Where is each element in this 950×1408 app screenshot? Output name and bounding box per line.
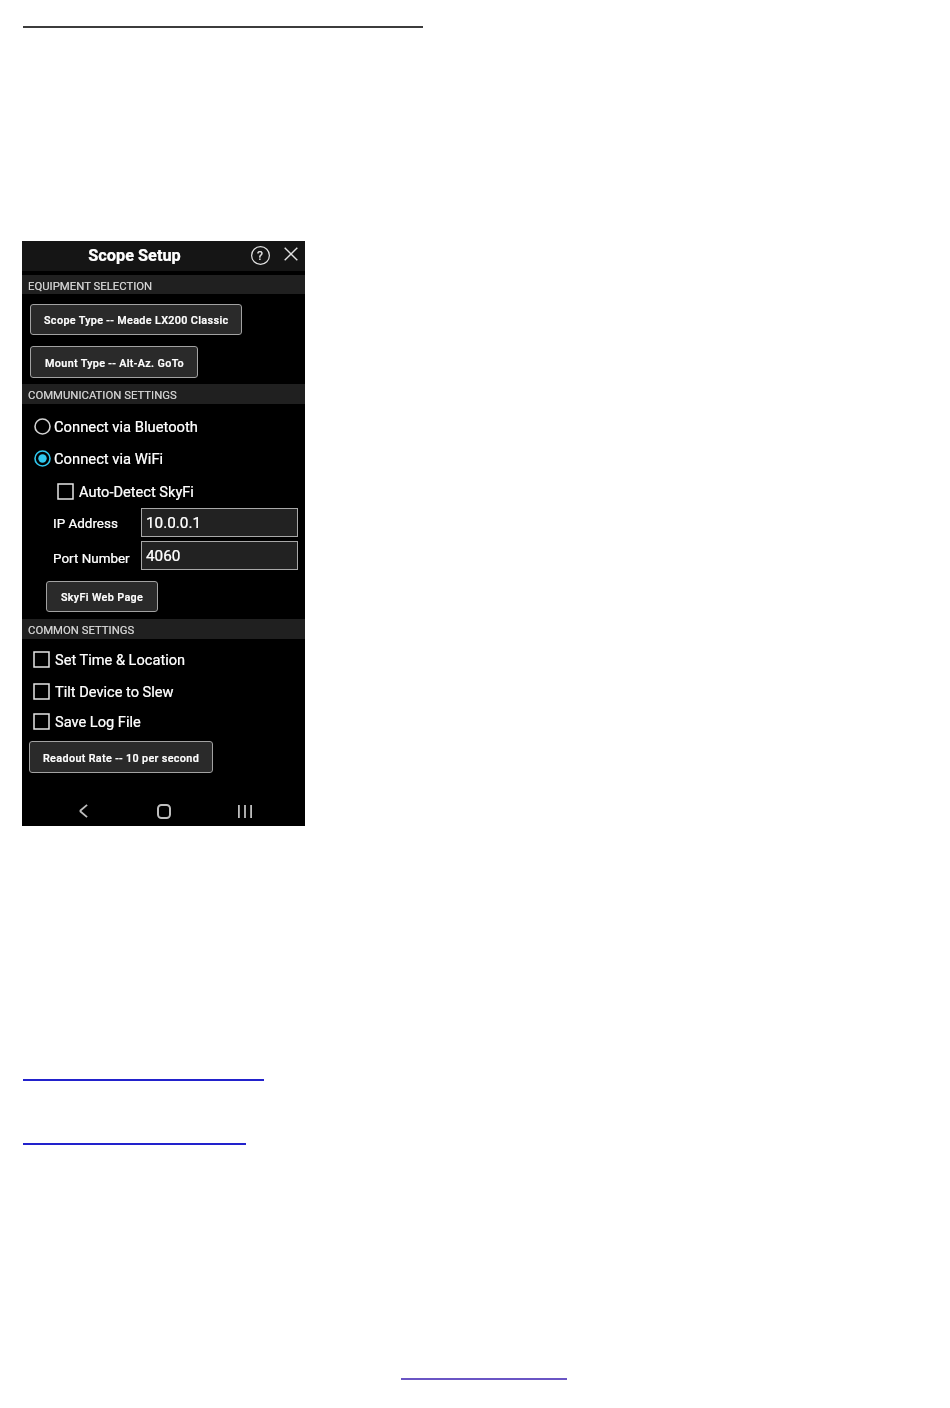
button[interactable]: Tilt Device to Slew: [30, 679, 260, 704]
button[interactable]: 10.0.0.1: [141, 508, 298, 537]
staticText: Save Log File: [55, 713, 141, 730]
staticText: Connect via Bluetooth: [54, 418, 198, 435]
button[interactable]: Readout Rate -- 10 per second: [29, 741, 213, 773]
button[interactable]: Save Log File: [30, 709, 260, 734]
staticText: COMMON SETTINGS: [28, 623, 135, 636]
staticText: Port Number: [53, 551, 130, 567]
button[interactable]: Auto-Detect SkyFi: [54, 479, 284, 504]
button[interactable]: Mount Type -- Alt-Az. GoTo: [30, 346, 198, 378]
button[interactable]: Set Time & Location: [30, 647, 260, 672]
button[interactable]: Back: [66, 794, 100, 828]
staticText: Auto-Detect SkyFi: [79, 483, 194, 500]
button[interactable]: SkyFi Web Page: [46, 581, 158, 612]
button[interactable]: Help: [248, 243, 272, 267]
staticText: ?: [257, 248, 263, 263]
button[interactable]: Home: [147, 794, 181, 828]
staticText: Scope Type -- Meade LX200 Classic: [44, 314, 229, 327]
button[interactable]: Connect via Bluetooth: [28, 412, 278, 440]
button[interactable]: Recent apps: [228, 794, 262, 828]
staticText: Mount Type -- Alt-Az. GoTo: [45, 357, 184, 370]
staticText: COMMUNICATION SETTINGS: [28, 388, 177, 401]
staticText: Readout Rate -- 10 per second: [43, 752, 200, 765]
staticText: 10.0.0.1: [146, 514, 202, 532]
button[interactable]: Connect via WiFi: [28, 444, 278, 472]
staticText: Connect via WiFi: [54, 450, 164, 467]
staticText: Set Time & Location: [55, 651, 186, 668]
button[interactable]: 4060: [141, 541, 298, 570]
staticText: Scope Setup: [88, 246, 181, 265]
staticText: Tilt Device to Slew: [55, 683, 174, 700]
staticText: SkyFi Web Page: [61, 591, 144, 604]
staticText: IP Address: [53, 516, 118, 532]
button[interactable]: Scope Type -- Meade LX200 Classic: [30, 304, 242, 335]
button[interactable]: Close: [279, 242, 303, 266]
staticText: 4060: [146, 547, 181, 565]
staticText: EQUIPMENT SELECTION: [28, 279, 153, 292]
